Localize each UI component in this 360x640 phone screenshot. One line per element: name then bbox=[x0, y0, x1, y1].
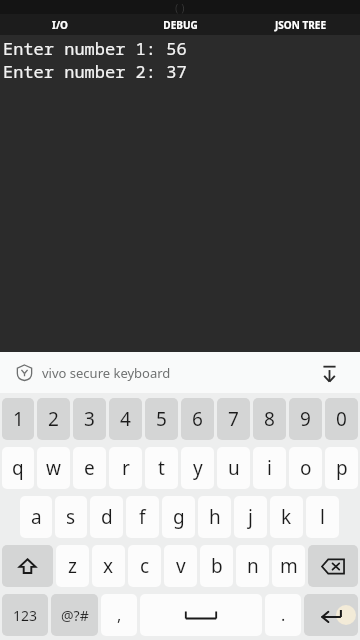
button[interactable]: 4 bbox=[109, 398, 142, 440]
staticText: 9 bbox=[300, 406, 311, 432]
staticText: f bbox=[139, 504, 146, 530]
button[interactable]: I/O bbox=[0, 14, 120, 35]
button[interactable]: w bbox=[37, 447, 70, 489]
staticText: t bbox=[158, 455, 165, 481]
button[interactable]: JSON TREE bbox=[240, 14, 360, 35]
staticText: x bbox=[103, 553, 114, 579]
staticText: o bbox=[300, 455, 312, 481]
staticText: z bbox=[68, 553, 77, 579]
staticText: y bbox=[193, 455, 203, 481]
staticText: 123 bbox=[13, 606, 38, 625]
staticText: j bbox=[248, 504, 253, 530]
staticText: , bbox=[117, 604, 122, 626]
button[interactable]: f bbox=[126, 496, 159, 538]
button[interactable]: 3 bbox=[73, 398, 106, 440]
button[interactable]: q bbox=[2, 447, 34, 489]
button[interactable]: 9 bbox=[289, 398, 322, 440]
button[interactable]: m bbox=[272, 545, 305, 587]
staticText: 5 bbox=[156, 406, 167, 432]
staticText: d bbox=[101, 504, 113, 530]
button[interactable]: v bbox=[164, 545, 197, 587]
staticText: 6 bbox=[192, 406, 203, 432]
button[interactable]: l bbox=[306, 496, 339, 538]
staticText: b bbox=[211, 553, 223, 579]
button[interactable]: 1 bbox=[2, 398, 34, 440]
staticText: vivo secure keyboard bbox=[42, 364, 171, 382]
button[interactable]: 7 bbox=[217, 398, 250, 440]
staticText: l bbox=[320, 504, 325, 530]
staticText: e bbox=[84, 455, 95, 481]
staticText: JSON TREE bbox=[275, 18, 326, 32]
staticText: i bbox=[267, 455, 272, 481]
button[interactable]: g bbox=[162, 496, 195, 538]
button[interactable]: u bbox=[217, 447, 250, 489]
button[interactable]: Shift bbox=[2, 545, 53, 587]
button[interactable]: @?# bbox=[51, 594, 98, 636]
button[interactable]: y bbox=[181, 447, 214, 489]
staticText: 7 bbox=[228, 406, 239, 432]
button[interactable]: h bbox=[198, 496, 231, 538]
button[interactable]: i bbox=[253, 447, 286, 489]
button[interactable]: 2 bbox=[37, 398, 70, 440]
button[interactable]: s bbox=[55, 496, 87, 538]
staticText: Enter number 2: 37 bbox=[3, 60, 187, 83]
button[interactable]: n bbox=[236, 545, 269, 587]
button[interactable]: 8 bbox=[253, 398, 286, 440]
button[interactable]: c bbox=[128, 545, 161, 587]
staticText: g bbox=[173, 504, 185, 530]
button[interactable]: 123 bbox=[2, 594, 48, 636]
staticText: c bbox=[140, 553, 150, 579]
button[interactable]: x bbox=[92, 545, 125, 587]
staticText: u bbox=[228, 455, 240, 481]
button[interactable]: 5 bbox=[145, 398, 178, 440]
staticText: ( ) bbox=[175, 0, 185, 14]
button[interactable]: p bbox=[325, 447, 358, 489]
staticText: m bbox=[280, 553, 298, 579]
staticText: w bbox=[46, 455, 61, 481]
staticText: DEBUG bbox=[163, 18, 198, 32]
staticText: 4 bbox=[120, 406, 131, 432]
button[interactable]: j bbox=[234, 496, 267, 538]
button[interactable]: o bbox=[289, 447, 322, 489]
staticText: 8 bbox=[264, 406, 275, 432]
staticText: 0 bbox=[336, 406, 347, 432]
staticText: q bbox=[12, 455, 24, 481]
button[interactable]: Hide keyboard bbox=[314, 358, 344, 388]
staticText: 3 bbox=[84, 406, 95, 432]
staticText: p bbox=[336, 455, 348, 481]
button[interactable]: t bbox=[145, 447, 178, 489]
button[interactable]: . bbox=[265, 594, 301, 636]
staticText: Enter number 1: 56 bbox=[3, 37, 187, 60]
staticText: k bbox=[281, 504, 292, 530]
button[interactable]: e bbox=[73, 447, 106, 489]
button[interactable]: d bbox=[90, 496, 123, 538]
button[interactable]: b bbox=[200, 545, 233, 587]
staticText: a bbox=[31, 504, 42, 530]
button[interactable]: , bbox=[101, 594, 137, 636]
staticText: n bbox=[247, 553, 259, 579]
staticText: I/O bbox=[52, 18, 68, 32]
button[interactable]: r bbox=[109, 447, 142, 489]
button[interactable]: Space bbox=[140, 594, 262, 636]
staticText: s bbox=[66, 504, 76, 530]
staticText: 2 bbox=[48, 406, 59, 432]
staticText: . bbox=[281, 604, 286, 626]
button[interactable]: Enter bbox=[304, 594, 358, 636]
staticText: @?# bbox=[61, 606, 89, 625]
button[interactable]: k bbox=[270, 496, 303, 538]
button[interactable]: Backspace bbox=[308, 545, 358, 587]
button[interactable]: vivo secure keyboard bbox=[16, 352, 314, 393]
staticText: 1 bbox=[13, 406, 24, 432]
staticText: r bbox=[122, 455, 130, 481]
staticText: v bbox=[176, 553, 186, 579]
button[interactable]: z bbox=[56, 545, 89, 587]
button[interactable]: a bbox=[20, 496, 52, 538]
staticText: h bbox=[209, 504, 221, 530]
button[interactable]: 0 bbox=[325, 398, 358, 440]
button[interactable]: DEBUG bbox=[120, 14, 240, 35]
button[interactable]: 6 bbox=[181, 398, 214, 440]
